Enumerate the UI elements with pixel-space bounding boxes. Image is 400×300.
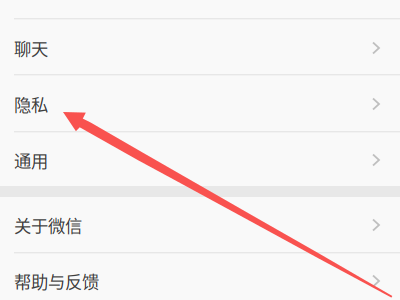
button[interactable]: 帮助与反馈 [0, 253, 400, 300]
staticText: 聊天 [14, 35, 48, 61]
button[interactable]: 隐私 [0, 76, 400, 132]
staticText: 隐私 [14, 91, 48, 117]
staticText: 通用 [14, 147, 48, 173]
button[interactable]: 聊天 [0, 20, 400, 76]
staticText: 关于微信 [14, 212, 82, 238]
staticText: 帮助与反馈 [14, 268, 99, 294]
button[interactable]: 关于微信 [0, 197, 400, 253]
button[interactable]: 通用 [0, 133, 400, 187]
